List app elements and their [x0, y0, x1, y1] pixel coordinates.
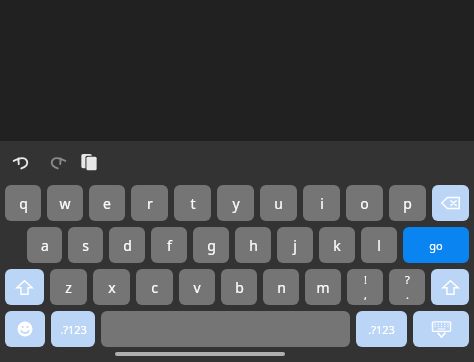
staticText: t	[190, 194, 196, 213]
staticText: g	[207, 236, 216, 255]
button[interactable]: .?123	[356, 311, 407, 347]
staticText: l	[377, 236, 381, 255]
staticText: k	[333, 236, 341, 255]
staticText: o	[360, 194, 369, 213]
staticText: v	[193, 278, 201, 297]
button[interactable]: s	[68, 227, 103, 263]
button[interactable]: Undo	[9, 149, 35, 175]
button[interactable]: t	[174, 185, 211, 221]
button[interactable]: Redo	[44, 149, 70, 175]
button[interactable]: ?	[389, 269, 425, 305]
staticText: c	[151, 278, 158, 297]
staticText: s	[82, 236, 89, 255]
button[interactable]: d	[109, 227, 145, 263]
button[interactable]: b	[221, 269, 257, 305]
button[interactable]: f	[151, 227, 187, 263]
staticText: x	[108, 278, 116, 297]
button[interactable]: go	[403, 227, 469, 263]
staticText: w	[59, 194, 71, 213]
button[interactable]: Shift	[431, 269, 469, 305]
button[interactable]: w	[47, 185, 83, 221]
button[interactable]: Paste	[76, 149, 102, 175]
button[interactable]: p	[389, 185, 426, 221]
button[interactable]: Space	[101, 311, 350, 347]
staticText: e	[103, 194, 111, 213]
button[interactable]: r	[131, 185, 168, 221]
staticText: n	[277, 278, 286, 297]
button[interactable]: e	[89, 185, 125, 221]
button[interactable]: v	[179, 269, 215, 305]
staticText: .?123	[60, 322, 87, 337]
staticText: u	[274, 194, 283, 213]
button[interactable]: Hide keyboard	[413, 311, 469, 347]
staticText: m	[316, 278, 330, 297]
staticText: ,	[364, 287, 367, 302]
staticText: b	[235, 278, 244, 297]
button[interactable]: u	[260, 185, 297, 221]
button[interactable]: o	[346, 185, 383, 221]
button[interactable]: x	[93, 269, 130, 305]
button[interactable]: y	[217, 185, 254, 221]
button[interactable]: j	[277, 227, 313, 263]
button[interactable]: Shift	[5, 269, 44, 305]
button[interactable]: Emoji	[5, 311, 45, 347]
staticText: h	[249, 236, 258, 255]
staticText: f	[167, 236, 172, 255]
button[interactable]: k	[319, 227, 355, 263]
staticText: go	[429, 238, 443, 253]
button[interactable]: a	[27, 227, 62, 263]
staticText: !	[364, 272, 367, 287]
button[interactable]: z	[50, 269, 87, 305]
staticText: d	[123, 236, 132, 255]
staticText: y	[232, 194, 240, 213]
staticText: z	[65, 278, 72, 297]
button[interactable]: m	[305, 269, 341, 305]
staticText: j	[293, 236, 297, 255]
button[interactable]: h	[235, 227, 271, 263]
staticText: p	[403, 194, 412, 213]
button[interactable]: i	[303, 185, 340, 221]
staticText: a	[41, 236, 49, 255]
staticText: r	[147, 194, 153, 213]
button[interactable]: g	[193, 227, 229, 263]
button[interactable]: c	[136, 269, 173, 305]
button[interactable]: Backspace	[432, 185, 469, 221]
button[interactable]: .?123	[51, 311, 95, 347]
staticText: .	[406, 287, 409, 302]
staticText: q	[19, 194, 28, 213]
button[interactable]: !	[347, 269, 383, 305]
staticText: ?	[405, 272, 410, 287]
button[interactable]: n	[263, 269, 299, 305]
button[interactable]: q	[5, 185, 41, 221]
staticText: i	[320, 194, 324, 213]
staticText: .?123	[368, 322, 395, 337]
button[interactable]: l	[361, 227, 397, 263]
